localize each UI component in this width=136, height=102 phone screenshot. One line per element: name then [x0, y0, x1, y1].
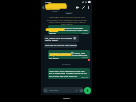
button[interactable]: Well Ok! I just wanted to ask you for a …: [48, 68, 90, 79]
button[interactable]: It's been a pleasure 😊 meet, feel free, …: [48, 50, 90, 59]
staticText: Aisha: [52, 6, 60, 10]
button[interactable]: Contact avatar: [46, 5, 51, 10]
staticText: Hii, thank you for texting 😊 yes in exam…: [45, 36, 77, 42]
button[interactable]: Back: [41, 5, 46, 10]
staticText: 10:34: [45, 0, 52, 3]
staticText: TODAY: [66, 12, 72, 14]
button[interactable]: how did you do for your exams?: [44, 43, 77, 48]
button[interactable]: Video call: [75, 5, 80, 10]
button[interactable]: Hey so for tomorrow Yesterday despite yo…: [48, 25, 90, 34]
button[interactable]: Record voice message: [84, 87, 91, 94]
staticText: 9:24 PM: [82, 56, 88, 58]
staticText: It's been a pleasure 😊 meet, feel free, …: [49, 51, 88, 59]
button[interactable]: Hii, thank you for texting 😊 yes in exam…: [44, 35, 79, 42]
staticText: Messages and calls are end-to-end encryp…: [47, 16, 87, 25]
staticText: Well Ok! I just wanted to ask you for a …: [49, 69, 88, 78]
button[interactable]: Voice call: [81, 5, 86, 10]
staticText: 9:18 PM: [82, 32, 88, 34]
staticText: Hey so for tomorrow Yesterday despite yo…: [49, 26, 88, 34]
button[interactable]: Message: [43, 87, 84, 93]
staticText: Message: [49, 89, 75, 92]
staticText: 10:02 AM: [81, 76, 88, 78]
staticText: online: [52, 10, 58, 13]
staticText: how did you do for your exams?: [45, 44, 77, 47]
staticText: SATURDAY: [62, 63, 71, 65]
button[interactable]: More options: [86, 5, 91, 10]
